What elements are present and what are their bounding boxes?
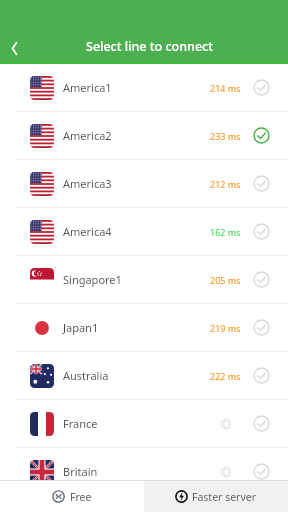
staticText: 162 ms — [210, 226, 241, 238]
button[interactable]: France — [0, 400, 288, 448]
staticText: 212 ms — [210, 178, 241, 190]
staticText: 222 ms — [210, 370, 241, 382]
staticText: America2 — [63, 128, 112, 143]
staticText: 205 ms — [210, 274, 241, 286]
button[interactable]: Australia — [0, 352, 288, 400]
button[interactable]: America4 — [0, 208, 288, 256]
staticText: France — [63, 416, 98, 431]
button[interactable]: Free — [0, 481, 144, 512]
staticText: America1 — [63, 80, 112, 95]
button[interactable]: Japan1 — [0, 304, 288, 352]
button[interactable]: America1 — [0, 64, 288, 112]
staticText: Australia — [63, 368, 109, 383]
button[interactable]: Faster server — [144, 481, 288, 512]
staticText: Japan1 — [63, 320, 99, 335]
staticText: Free — [70, 490, 92, 504]
button[interactable]: America2 — [0, 112, 288, 160]
staticText: 214 ms — [210, 82, 241, 94]
button[interactable]: America3 — [0, 160, 288, 208]
staticText: Select line to connect — [86, 38, 214, 55]
button[interactable] — [0, 33, 28, 64]
staticText: America3 — [63, 176, 112, 191]
staticText: America4 — [63, 224, 112, 239]
staticText: 219 ms — [210, 322, 241, 334]
staticText: Faster server — [192, 490, 257, 504]
staticText: 233 ms — [210, 130, 241, 142]
button[interactable]: Britain — [0, 448, 288, 496]
staticText: Britain — [63, 464, 98, 479]
button[interactable]: Singapore1 — [0, 256, 288, 304]
staticText: Singapore1 — [63, 272, 122, 287]
